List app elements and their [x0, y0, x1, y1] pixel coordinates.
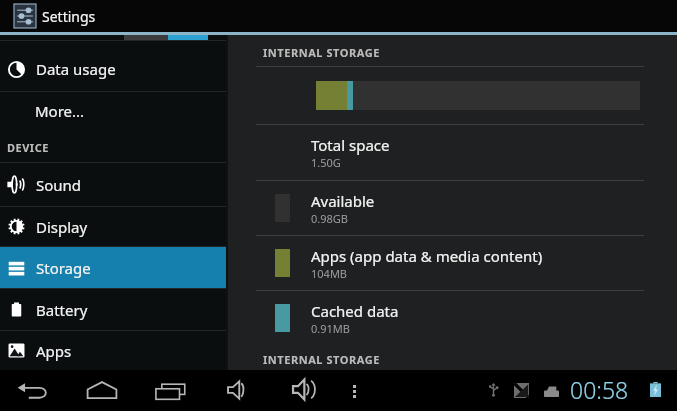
- button[interactable]: Available: [228, 181, 677, 235]
- button[interactable]: Volume up: [280, 370, 328, 411]
- staticText: Apps: [36, 341, 72, 361]
- staticText: 104MB: [311, 266, 348, 281]
- button[interactable]: Volume down: [214, 370, 262, 411]
- staticText: INTERNAL STORAGE: [263, 45, 380, 60]
- staticText: Storage: [36, 258, 91, 278]
- staticText: More...: [35, 101, 85, 121]
- button[interactable]: Apps: [0, 331, 226, 370]
- staticText: Data usage: [36, 59, 116, 79]
- staticText: Total space: [311, 135, 390, 155]
- staticText: Cached data: [311, 301, 399, 321]
- button[interactable]: Home: [76, 370, 124, 411]
- staticText: Battery: [36, 300, 88, 320]
- button[interactable]: Battery: [0, 289, 226, 330]
- button[interactable]: Storage: [0, 247, 226, 288]
- staticText: 0.98GB: [311, 211, 348, 226]
- button[interactable]: Display: [0, 207, 226, 246]
- staticText: Available: [311, 191, 375, 211]
- staticText: Apps (app data & media content): [311, 246, 543, 266]
- staticText: 0.91MB: [311, 321, 350, 336]
- button[interactable]: Cached data: [228, 291, 677, 345]
- staticText: 00:58: [570, 374, 629, 402]
- button[interactable]: Total space: [228, 125, 677, 180]
- staticText: INTERNAL STORAGE: [263, 352, 380, 367]
- button[interactable]: Menu: [334, 370, 378, 411]
- button[interactable]: Apps (app data & media content): [228, 236, 677, 290]
- button[interactable]: More...: [0, 92, 226, 129]
- button[interactable]: Data usage: [0, 41, 226, 91]
- staticText: Sound: [36, 175, 82, 195]
- button[interactable]: Recents: [145, 370, 193, 411]
- staticText: Display: [36, 217, 88, 237]
- staticText: Settings: [42, 7, 96, 26]
- button[interactable]: Back: [8, 370, 56, 411]
- staticText: DEVICE: [7, 140, 49, 155]
- button[interactable]: Sound: [0, 163, 226, 206]
- staticText: 1.50G: [311, 155, 341, 170]
